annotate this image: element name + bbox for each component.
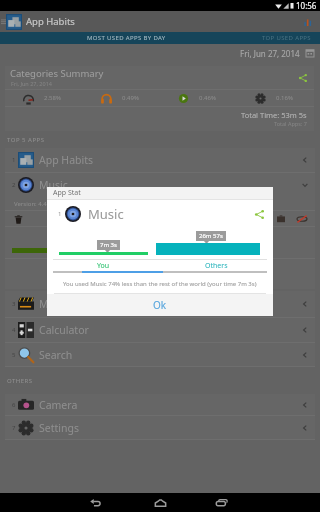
button[interactable]: 4 xyxy=(5,318,315,342)
button[interactable]: 0.16% xyxy=(237,90,314,106)
button[interactable]: 3 xyxy=(5,291,315,317)
staticText: TOP USED APPS xyxy=(262,34,311,42)
button[interactable]: 2.58% xyxy=(5,90,83,106)
staticText: You xyxy=(97,261,110,271)
button[interactable]: Fri, Jun 27, 2014 xyxy=(0,44,320,62)
staticText: 1 xyxy=(58,210,62,218)
button[interactable]: Share summary xyxy=(292,66,314,89)
staticText: 1 xyxy=(12,156,16,164)
button[interactable]: Uninstall xyxy=(11,212,25,226)
staticText: 3 xyxy=(12,300,16,308)
staticText: Calculator xyxy=(39,323,89,337)
staticText: Camera xyxy=(39,398,78,412)
staticText: Ok xyxy=(153,298,167,312)
staticText: Music xyxy=(88,205,124,223)
staticText: Others xyxy=(205,261,228,271)
staticText: 4 xyxy=(12,326,16,334)
button[interactable]: 2 xyxy=(5,173,315,197)
staticText: 5 xyxy=(12,351,16,359)
staticText: App Habits xyxy=(26,15,75,28)
staticText: 26m 57s xyxy=(199,232,223,240)
staticText: 2.58% xyxy=(44,94,61,102)
button[interactable]: Share stats xyxy=(249,204,269,224)
button[interactable]: Usage chart xyxy=(299,13,317,31)
staticText: Movie Studio xyxy=(39,297,103,311)
button[interactable]: 5 xyxy=(5,343,315,366)
button[interactable]: Home xyxy=(144,493,176,512)
staticText: Fri, Jun 27, 2014 xyxy=(240,48,300,59)
staticText: Fri, Jun 27, 2014 xyxy=(11,80,52,87)
staticText: Total Apps: 7 xyxy=(274,120,307,127)
staticText: 0.16% xyxy=(276,94,293,102)
staticText: You used Music 74% less than the rest of… xyxy=(63,280,257,288)
staticText: MOST USED APPS BY DAY xyxy=(87,34,166,42)
button[interactable]: 7 xyxy=(5,416,315,439)
staticText: Total Time: 53m 5s xyxy=(241,110,307,120)
button[interactable]: 0.46% xyxy=(160,90,237,106)
staticText: 2 xyxy=(12,181,16,189)
button[interactable]: Back xyxy=(79,493,111,512)
button[interactable]: Open navigation drawer xyxy=(0,11,6,32)
button[interactable]: Ok xyxy=(47,294,273,316)
staticText: Settings xyxy=(39,421,79,435)
button[interactable]: MOST USED APPS BY DAY xyxy=(0,32,253,44)
staticText: TOP 5 APPS xyxy=(7,136,45,144)
staticText: Categories Summary xyxy=(10,67,104,80)
staticText: 7 xyxy=(12,424,16,432)
button[interactable]: Recent apps xyxy=(205,493,237,512)
staticText: 0.46% xyxy=(199,94,216,102)
staticText: Version: 4.4.2 xyxy=(14,200,52,208)
staticText: App Habits xyxy=(39,153,94,167)
staticText: 10:56 xyxy=(296,0,317,11)
button[interactable]: 6 xyxy=(5,394,315,415)
button[interactable]: 1 xyxy=(5,148,315,172)
staticText: 7m 3s xyxy=(100,241,117,249)
staticText: Music xyxy=(39,178,68,192)
button[interactable]: Exclude app xyxy=(295,212,309,226)
button[interactable]: TOP USED APPS xyxy=(253,32,320,44)
staticText: App Stat xyxy=(53,188,81,198)
staticText: Search xyxy=(39,348,73,362)
staticText: 0.49% xyxy=(122,94,139,102)
staticText: 6 xyxy=(12,401,16,409)
staticText: OTHERS xyxy=(7,377,33,385)
button[interactable]: 0.49% xyxy=(83,90,160,106)
button[interactable]: App info xyxy=(274,212,288,226)
